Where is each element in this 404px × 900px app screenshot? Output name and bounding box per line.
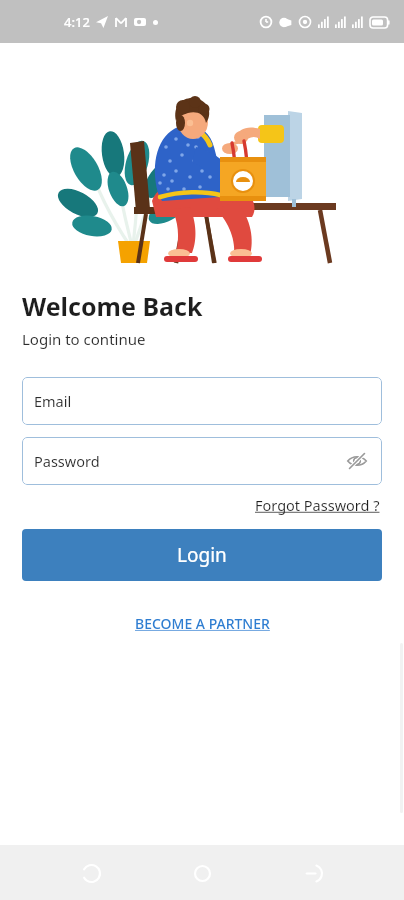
button[interactable]: BECOME A PARTNER [131,610,274,637]
staticText: Welcome Back [22,289,203,323]
button[interactable]: Back [71,853,111,893]
staticText: BECOME A PARTNER [135,614,270,633]
button[interactable]: Email [22,377,382,425]
staticText: Login to continue [22,329,146,349]
button[interactable]: Forgot Password ? [253,493,382,517]
staticText: Login [177,542,227,568]
button[interactable]: Show password [344,448,370,474]
staticText: Forgot Password ? [255,495,380,515]
staticText: Email [34,391,72,411]
staticText: 4:12 [64,13,90,31]
button[interactable]: Home [182,853,222,893]
button[interactable]: Password [22,437,382,485]
button[interactable]: Login [22,529,382,581]
staticText: Password [34,451,100,471]
